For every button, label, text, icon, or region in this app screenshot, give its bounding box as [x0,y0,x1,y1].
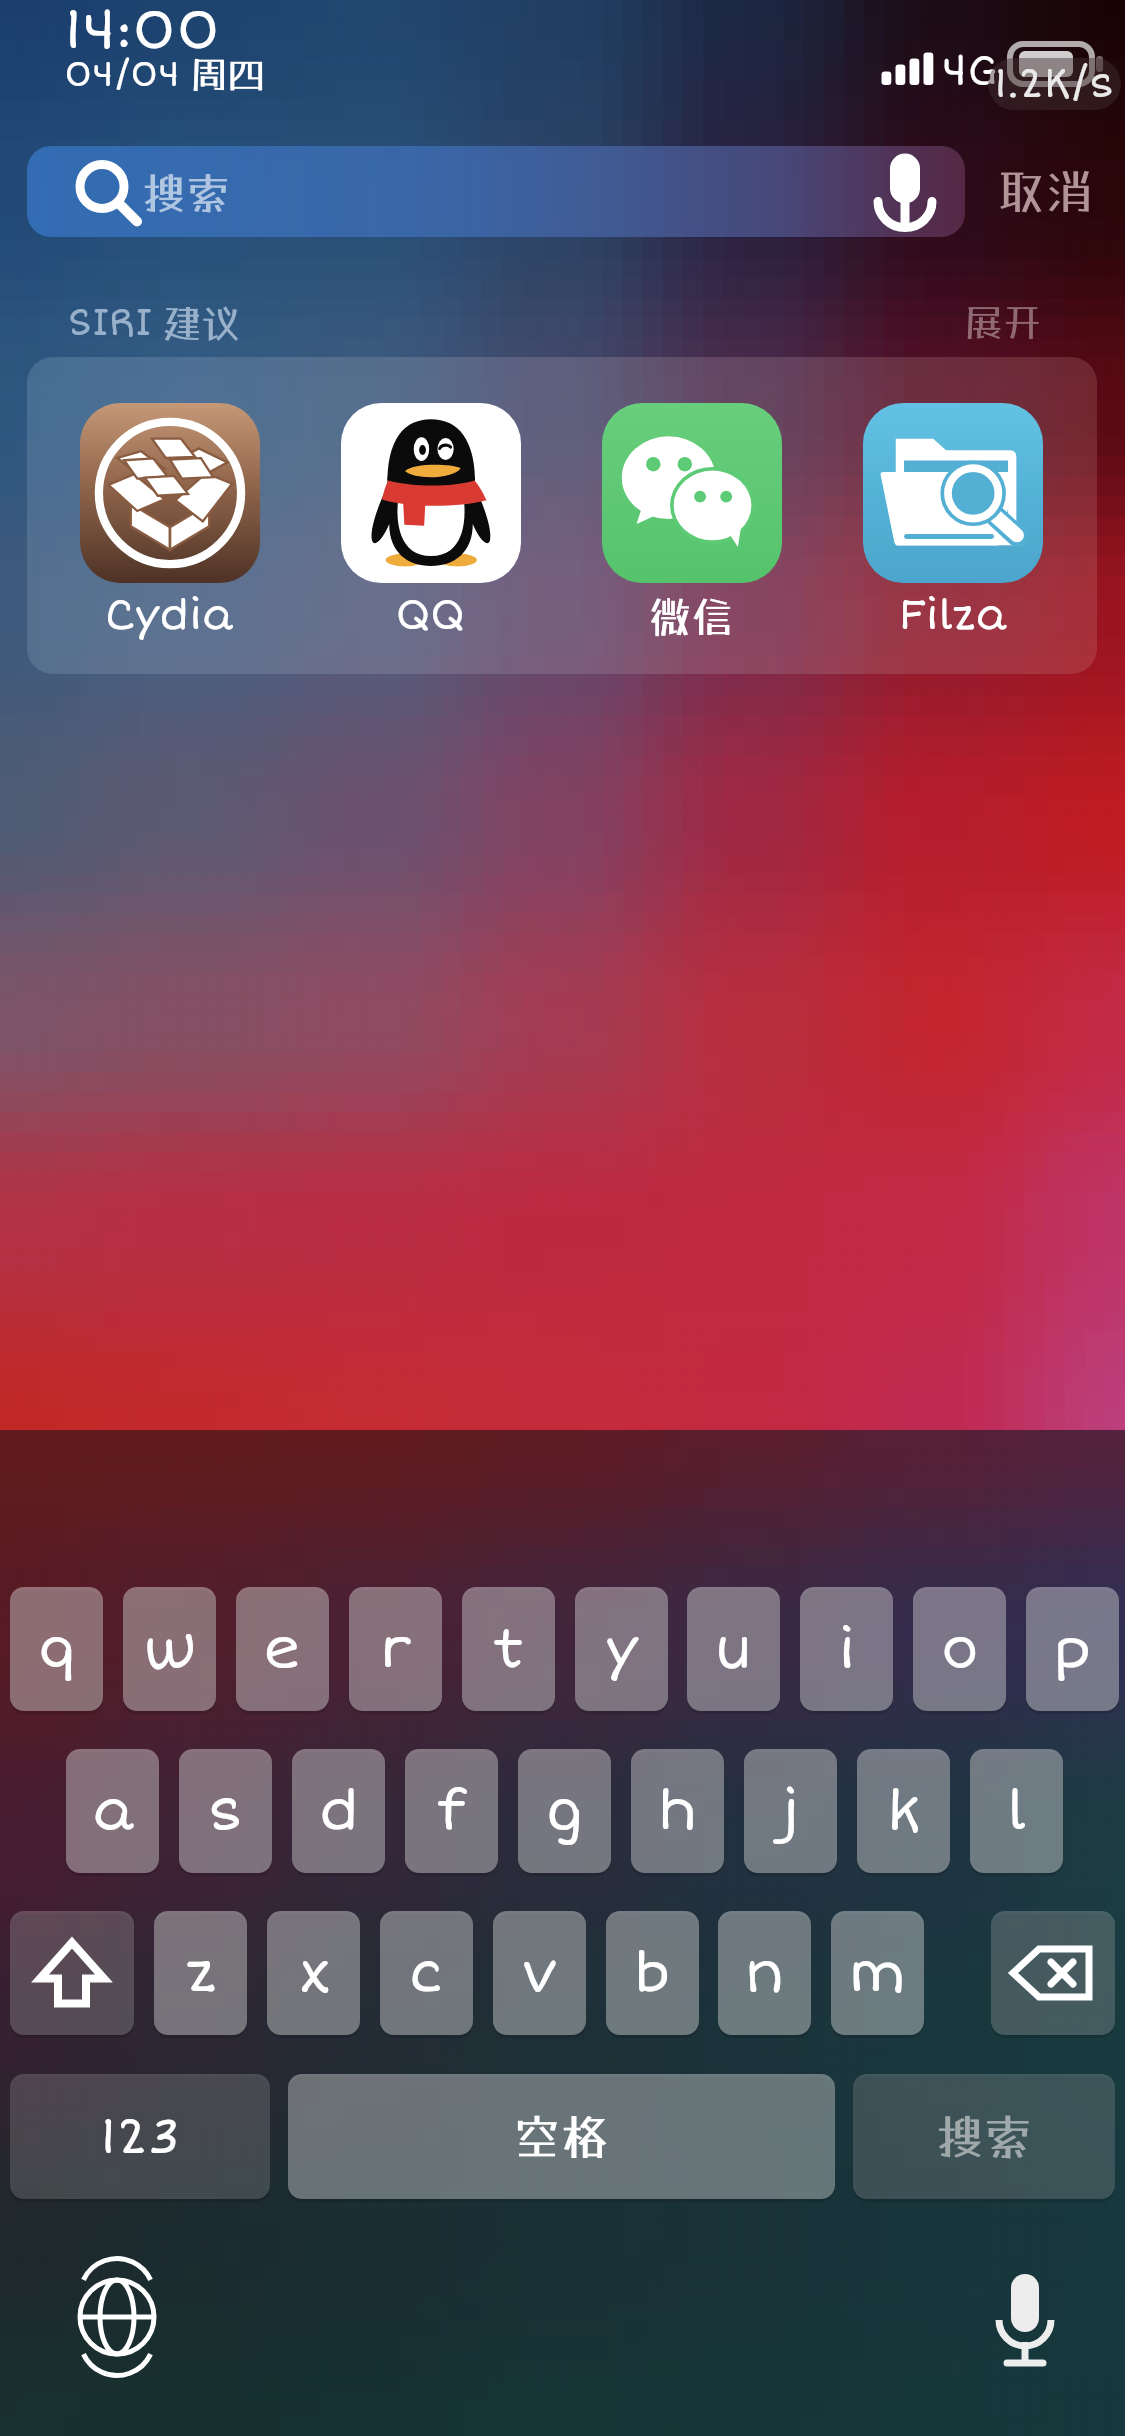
staticText: 空格 [513,2108,610,2165]
staticText: o [941,1615,979,1684]
button[interactable]: Switch keyboard [77,2277,157,2357]
button[interactable]: c [380,1911,473,2035]
button[interactable]: q [10,1587,103,1711]
staticText: SIRI [68,300,152,347]
button[interactable]: Cydia [39,383,300,648]
button[interactable]: Shift [10,1911,134,2035]
button[interactable]: Dictation [994,2272,1056,2372]
staticText: p [1053,1615,1092,1684]
staticText: l [1007,1777,1027,1846]
button[interactable]: Backspace [991,1911,1115,2035]
button[interactable]: b [606,1911,699,2035]
staticText: 04/04 [64,52,180,96]
staticText: m [849,1939,906,2008]
staticText: w [143,1615,197,1684]
staticText: t [493,1615,525,1684]
staticText: QQ [396,590,466,642]
staticText: 搜索 [936,2108,1033,2165]
staticText: b [634,1939,671,2008]
button[interactable]: m [831,1911,924,2035]
button[interactable]: r [349,1587,442,1711]
button[interactable]: i [800,1587,893,1711]
button[interactable]: x [267,1911,360,2035]
staticText: 周四 [190,52,265,96]
staticText: Filza [899,590,1007,642]
button[interactable]: z [154,1911,247,2035]
staticText: h [658,1777,697,1846]
button[interactable]: u [687,1587,780,1711]
staticText: f [436,1777,467,1846]
button[interactable]: Filza [822,383,1083,648]
button[interactable]: g [518,1749,611,1873]
staticText: q [38,1615,76,1684]
staticText: a [92,1777,134,1846]
button[interactable]: WeChat [561,383,822,648]
button[interactable]: 搜索 [853,2074,1115,2199]
staticText: g [546,1777,584,1846]
staticText: 123 [100,2106,181,2168]
staticText: s [207,1777,244,1846]
staticText: i [838,1615,856,1684]
staticText: z [186,1939,216,2008]
button[interactable]: t [462,1587,555,1711]
button[interactable]: f [405,1749,498,1873]
staticText: Cydia [105,590,234,642]
staticText: 微信 [649,592,734,642]
button[interactable]: k [857,1749,950,1873]
button[interactable]: w [123,1587,216,1711]
button[interactable]: h [631,1749,724,1873]
staticText: e [264,1615,301,1684]
button[interactable]: n [718,1911,811,2035]
button[interactable]: v [493,1911,586,2035]
staticText: 1.2K/s [994,60,1115,109]
button[interactable]: 123 [10,2074,270,2199]
button[interactable]: j [744,1749,837,1873]
button[interactable]: 取消 [985,146,1105,237]
staticText: j [782,1777,800,1846]
button[interactable]: l [970,1749,1063,1873]
button[interactable]: QQ [300,383,561,648]
staticText: v [522,1939,558,2008]
button[interactable]: d [292,1749,385,1873]
staticText: x [298,1939,330,2008]
button[interactable]: o [913,1587,1006,1711]
staticText: 4G [942,46,998,98]
staticText: 14:00 [64,0,220,65]
staticText: 展开 [965,300,1042,345]
staticText: c [409,1939,444,2008]
button[interactable]: a [66,1749,159,1873]
button[interactable]: p [1026,1587,1119,1711]
staticText: r [380,1615,412,1684]
staticText: u [715,1615,752,1684]
staticText: d [319,1777,359,1846]
staticText: n [745,1939,785,2008]
button[interactable]: 搜索 [27,146,965,237]
staticText: y [605,1615,639,1684]
staticText: 建议 [162,300,242,347]
staticText: k [887,1777,921,1846]
button[interactable]: 空格 [288,2074,835,2199]
button[interactable]: s [179,1749,272,1873]
button[interactable]: 展开 [965,300,1085,348]
button[interactable]: y [575,1587,668,1711]
staticText: 搜索 [142,167,230,219]
staticText: 取消 [997,163,1094,220]
button[interactable]: e [236,1587,329,1711]
